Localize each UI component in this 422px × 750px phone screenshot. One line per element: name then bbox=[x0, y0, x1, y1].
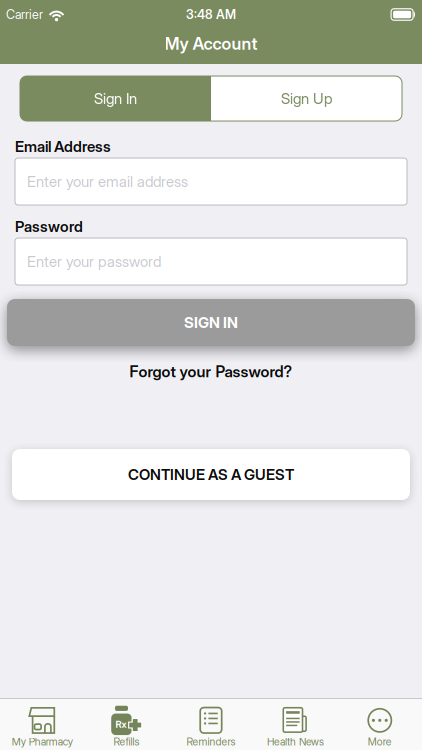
button[interactable]: CONTINUE AS A GUEST bbox=[0, 449, 422, 500]
staticText: Rx bbox=[116, 718, 127, 730]
staticText: Forgot your Password? bbox=[129, 362, 292, 381]
staticText: More bbox=[368, 735, 392, 748]
staticText: 3:48 AM bbox=[186, 7, 236, 22]
staticText: Carrier bbox=[6, 7, 43, 22]
staticText: Sign In bbox=[94, 89, 137, 107]
staticText: My Account bbox=[164, 33, 257, 54]
staticText: Email Address bbox=[15, 137, 111, 155]
button[interactable]: More bbox=[338, 705, 422, 750]
staticText: Refills bbox=[114, 735, 140, 748]
staticText: Enter your password bbox=[27, 252, 161, 270]
button[interactable]: Sign In bbox=[20, 76, 211, 121]
staticText: My Pharmacy bbox=[12, 735, 73, 748]
staticText: Health News bbox=[267, 735, 324, 748]
button[interactable]: Health News bbox=[253, 705, 338, 750]
staticText: Sign Up bbox=[281, 89, 332, 107]
button[interactable]: My Pharmacy bbox=[0, 705, 84, 750]
button[interactable]: SIGN IN bbox=[0, 299, 422, 346]
staticText: Enter your email address bbox=[27, 172, 188, 190]
staticText: CONTINUE AS A GUEST bbox=[128, 465, 294, 483]
button[interactable]: Forgot your Password? bbox=[129, 363, 292, 380]
staticText: Password bbox=[15, 217, 83, 235]
button[interactable]: Reminders bbox=[169, 705, 253, 750]
button[interactable]: Rx bbox=[84, 705, 169, 750]
staticText: Reminders bbox=[186, 735, 235, 748]
staticText: SIGN IN bbox=[184, 313, 238, 331]
button[interactable]: Sign Up bbox=[211, 76, 402, 121]
